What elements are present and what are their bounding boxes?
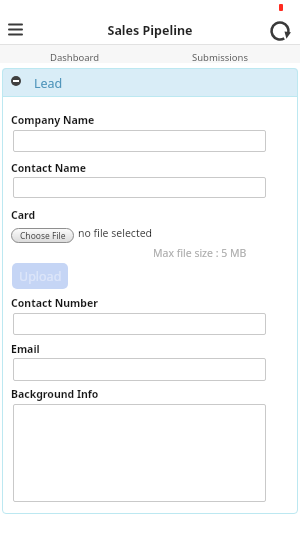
staticText: Background Info — [11, 387, 99, 401]
staticText: no file selected — [78, 226, 153, 240]
button[interactable]: Upload — [12, 263, 68, 289]
staticText: Company Name — [11, 113, 95, 127]
button[interactable]: Choose File — [11, 228, 74, 243]
staticText: Card — [11, 208, 36, 222]
button[interactable]: Dashboard — [0, 45, 150, 69]
staticText: Submissions — [192, 51, 248, 64]
staticText: Sales Pipeline — [0, 22, 300, 39]
staticText: Max file size : 5 MB — [153, 246, 247, 260]
staticText: Upload — [19, 268, 62, 285]
button[interactable] — [13, 177, 266, 198]
button[interactable]: Submissions — [150, 45, 300, 69]
staticText: Email — [11, 342, 40, 356]
button[interactable] — [13, 313, 266, 335]
staticText: Choose File — [20, 230, 66, 242]
button[interactable] — [4, 20, 28, 40]
button[interactable] — [266, 17, 294, 45]
button[interactable] — [13, 404, 266, 502]
staticText: Contact Name — [11, 161, 87, 175]
button[interactable] — [13, 358, 266, 381]
button[interactable] — [13, 130, 266, 152]
button[interactable]: Lead — [2, 68, 298, 96]
staticText: Dashboard — [50, 51, 100, 64]
staticText: Lead — [34, 75, 63, 92]
staticText: Contact Number — [11, 296, 98, 310]
